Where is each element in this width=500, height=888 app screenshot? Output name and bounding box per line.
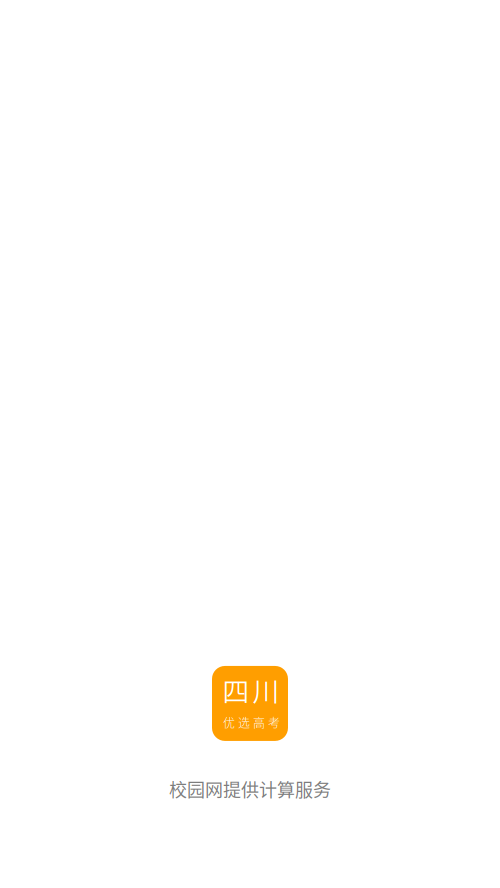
staticText: 校园网提供计算服务 (169, 776, 331, 802)
staticText: 四川 (222, 671, 279, 709)
staticText: 优选高考 (223, 714, 280, 731)
